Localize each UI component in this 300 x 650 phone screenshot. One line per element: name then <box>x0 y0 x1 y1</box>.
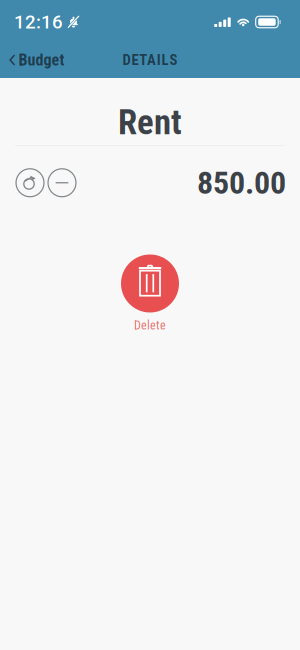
staticText: Delete <box>134 318 166 333</box>
staticText: DETAILS <box>123 51 177 69</box>
staticText: Budget <box>18 51 64 69</box>
button[interactable]: Budget <box>0 44 74 76</box>
button[interactable]: Repeat <box>14 167 46 199</box>
staticText: Rent <box>118 102 182 143</box>
button[interactable]: Delete <box>121 254 179 330</box>
staticText: 850.00 <box>197 164 286 201</box>
staticText: 12:16 <box>14 11 63 33</box>
button[interactable]: Subtract <box>46 167 78 199</box>
